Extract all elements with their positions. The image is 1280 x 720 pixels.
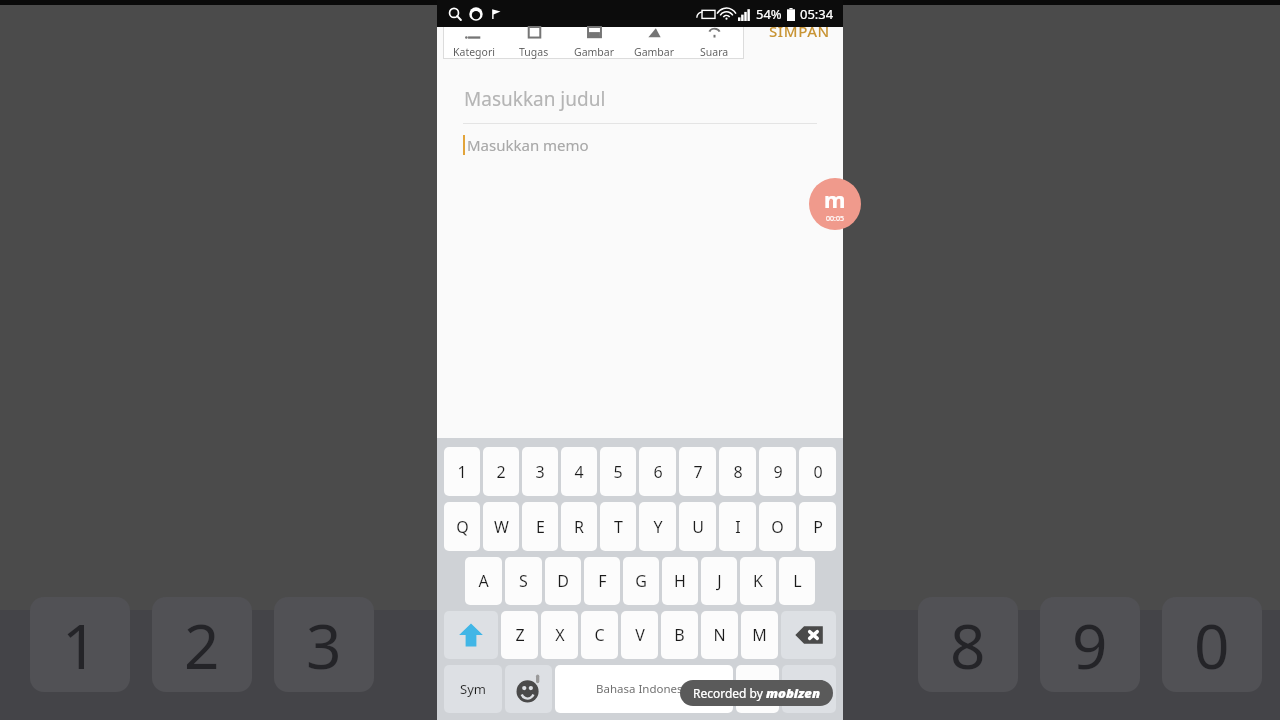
- button[interactable]: C: [581, 611, 618, 659]
- button[interactable]: SIMPAN: [769, 21, 830, 41]
- button[interactable]: U: [679, 502, 716, 551]
- staticText: R: [574, 516, 584, 538]
- staticText: Suara: [700, 45, 729, 59]
- button[interactable]: Mobizen recorder: [809, 178, 861, 230]
- button[interactable]: 8: [719, 447, 756, 496]
- staticText: W: [494, 516, 509, 538]
- staticText: 2: [496, 461, 506, 483]
- staticText: C: [594, 624, 605, 646]
- staticText: .: [755, 678, 760, 700]
- staticText: K: [753, 570, 763, 592]
- staticText: V: [635, 624, 645, 646]
- staticText: F: [598, 570, 607, 592]
- button[interactable]: D: [545, 557, 581, 605]
- button[interactable]: F: [584, 557, 620, 605]
- button[interactable]: Tugas: [504, 27, 564, 59]
- staticText: m: [824, 184, 846, 214]
- button[interactable]: P: [799, 502, 836, 551]
- staticText: Q: [456, 516, 469, 538]
- staticText: B: [674, 624, 685, 646]
- button[interactable]: 9: [759, 447, 796, 496]
- staticText: 9: [1072, 603, 1108, 687]
- staticText: D: [557, 570, 569, 592]
- staticText: 0: [1194, 603, 1230, 687]
- staticText: T: [614, 516, 623, 538]
- button[interactable]: Masukkan memo: [463, 135, 589, 155]
- button[interactable]: Bahasa Indonesia: [555, 665, 733, 713]
- staticText: Bahasa Indonesia: [596, 681, 692, 697]
- button[interactable]: B: [661, 611, 698, 659]
- staticText: 0: [813, 461, 823, 483]
- button[interactable]: G: [623, 557, 659, 605]
- button[interactable]: E: [522, 502, 558, 551]
- button[interactable]: O: [759, 502, 796, 551]
- button[interactable]: 0: [799, 447, 836, 496]
- button[interactable]: I: [719, 502, 756, 551]
- staticText: G: [635, 570, 647, 592]
- button[interactable]: 5: [600, 447, 636, 496]
- staticText: S: [519, 570, 528, 592]
- staticText: Y: [653, 516, 663, 538]
- staticText: Sym: [460, 680, 486, 698]
- staticText: 8: [950, 603, 986, 687]
- staticText: 4: [574, 461, 584, 483]
- staticText: 05:34: [800, 5, 834, 23]
- button[interactable]: .: [736, 665, 779, 713]
- staticText: 3: [306, 603, 342, 687]
- button[interactable]: N: [701, 611, 738, 659]
- staticText: mobizen: [766, 684, 820, 702]
- staticText: 9: [773, 461, 783, 483]
- button[interactable]: Backspace: [781, 611, 836, 659]
- button[interactable]: Suara: [684, 27, 744, 59]
- button[interactable]: Gambar: [564, 27, 624, 59]
- button[interactable]: Enter: [782, 665, 836, 713]
- button[interactable]: 6: [639, 447, 676, 496]
- button[interactable]: Q: [444, 502, 480, 551]
- button[interactable]: Masukkan judul: [464, 86, 606, 112]
- button[interactable]: T: [600, 502, 636, 551]
- button[interactable]: L: [779, 557, 815, 605]
- button[interactable]: Emoji: [505, 665, 552, 713]
- button[interactable]: A: [465, 557, 502, 605]
- button[interactable]: Shift: [444, 611, 498, 659]
- staticText: 2: [184, 603, 220, 687]
- staticText: I: [735, 516, 741, 538]
- button[interactable]: S: [505, 557, 542, 605]
- button[interactable]: X: [541, 611, 578, 659]
- staticText: 54%: [756, 5, 782, 23]
- button[interactable]: H: [662, 557, 698, 605]
- staticText: 1: [457, 461, 467, 483]
- button[interactable]: Y: [639, 502, 676, 551]
- staticText: 7: [693, 461, 703, 483]
- staticText: A: [478, 570, 489, 592]
- button[interactable]: V: [621, 611, 658, 659]
- staticText: L: [793, 570, 802, 592]
- staticText: 3: [535, 461, 545, 483]
- button[interactable]: M: [741, 611, 778, 659]
- button[interactable]: W: [483, 502, 519, 551]
- staticText: P: [813, 516, 823, 538]
- button[interactable]: 2: [483, 447, 519, 496]
- staticText: Masukkan memo: [467, 135, 589, 155]
- button[interactable]: Sym: [444, 665, 502, 713]
- staticText: Kategori: [453, 45, 495, 59]
- button[interactable]: 1: [444, 447, 480, 496]
- button[interactable]: Kategori: [443, 27, 504, 59]
- button[interactable]: Z: [501, 611, 538, 659]
- staticText: M: [752, 624, 767, 646]
- staticText: 00:05: [826, 214, 844, 224]
- button[interactable]: 4: [561, 447, 597, 496]
- button[interactable]: 7: [679, 447, 716, 496]
- button[interactable]: R: [561, 502, 597, 551]
- button[interactable]: Gambar: [624, 27, 684, 59]
- staticText: U: [692, 516, 704, 538]
- button[interactable]: K: [740, 557, 776, 605]
- staticText: 1: [62, 603, 98, 687]
- staticText: O: [771, 516, 784, 538]
- button[interactable]: J: [701, 557, 737, 605]
- staticText: Recorded by: [693, 685, 766, 701]
- button[interactable]: 3: [522, 447, 558, 496]
- staticText: H: [674, 570, 686, 592]
- staticText: Z: [515, 624, 525, 646]
- staticText: 5: [613, 461, 623, 483]
